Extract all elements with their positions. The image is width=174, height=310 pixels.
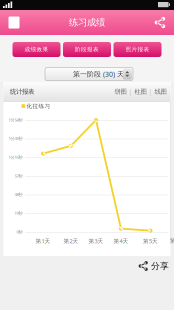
staticText: 57秒 [14, 173, 22, 179]
staticText: 柱图 [134, 87, 146, 96]
staticText: 饼图 [114, 87, 126, 96]
staticText: 第3天 [88, 237, 103, 245]
button[interactable]: Back [2, 10, 26, 35]
button[interactable]: 第一阶段 (30) 天 [45, 67, 133, 80]
staticText: 第5天 [143, 237, 158, 245]
staticText: 第4天 [113, 237, 128, 245]
staticText: 38秒 [14, 192, 22, 197]
button[interactable]: 阶段报表 [63, 42, 111, 57]
button[interactable]: 分享 [133, 258, 174, 274]
button[interactable]: 成绩效果 [12, 42, 60, 57]
staticText: 1分35秒 [8, 136, 22, 141]
staticText: 第2天 [63, 237, 78, 245]
staticText: | [128, 87, 132, 96]
staticText: 练习成绩 [69, 17, 105, 28]
button[interactable]: Share [148, 10, 172, 35]
staticText: 照片报表 [125, 46, 149, 53]
button[interactable]: 线图 [152, 82, 168, 101]
staticText: 19秒 [14, 210, 22, 216]
staticText: 1分16秒 [8, 154, 22, 160]
staticText: | [148, 87, 152, 96]
staticText: 成绩效果 [24, 46, 48, 53]
staticText: 第 [170, 237, 174, 245]
staticText: 统计报表 [10, 87, 34, 96]
staticText: 0秒 [16, 229, 22, 235]
staticText: 分享 [151, 260, 169, 272]
staticText: 化拉练习 [27, 102, 51, 110]
button[interactable]: 照片报表 [113, 42, 161, 57]
staticText: 阶段报表 [75, 46, 99, 53]
staticText: 线图 [154, 87, 166, 96]
staticText: 1分54秒 [8, 117, 22, 123]
button[interactable]: 饼图 [112, 82, 128, 101]
staticText: 第1天 [35, 237, 50, 245]
button[interactable]: 柱图 [132, 82, 148, 101]
staticText: 第一阶段 (30) 天 [73, 69, 124, 79]
